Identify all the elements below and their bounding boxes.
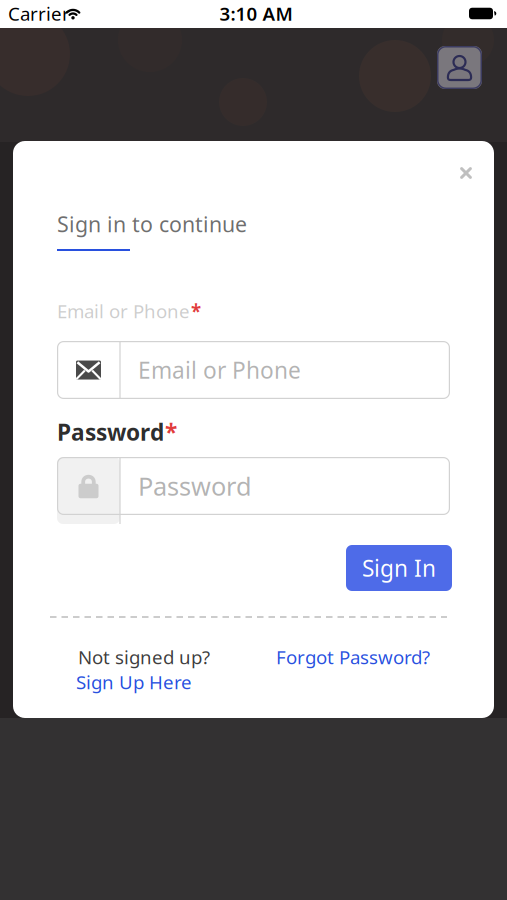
staticText: Password — [57, 417, 164, 447]
button[interactable]: Password — [57, 457, 450, 524]
staticText: Sign Up Here — [76, 670, 192, 694]
staticText: * — [165, 417, 177, 447]
staticText: Email or Phone — [138, 355, 301, 385]
staticText: Password — [138, 469, 252, 503]
button[interactable]: Email or Phone — [57, 341, 450, 399]
staticText: * — [191, 299, 201, 323]
staticText: 3:10 AM — [219, 1, 292, 26]
staticText: Forgot Password? — [276, 645, 430, 669]
staticText: Carrier — [8, 1, 70, 26]
button[interactable]: Forgot Password? — [276, 645, 456, 669]
staticText: Sign in to continue — [57, 210, 247, 238]
staticText: Not signed up? — [78, 645, 210, 669]
button[interactable]: Close — [451, 158, 481, 188]
button[interactable]: Sign In — [346, 545, 452, 591]
staticText: Email or Phone — [57, 299, 190, 323]
button[interactable]: Profile — [437, 46, 482, 89]
button[interactable]: Sign Up Here — [76, 670, 276, 694]
staticText: Sign In — [362, 553, 436, 583]
